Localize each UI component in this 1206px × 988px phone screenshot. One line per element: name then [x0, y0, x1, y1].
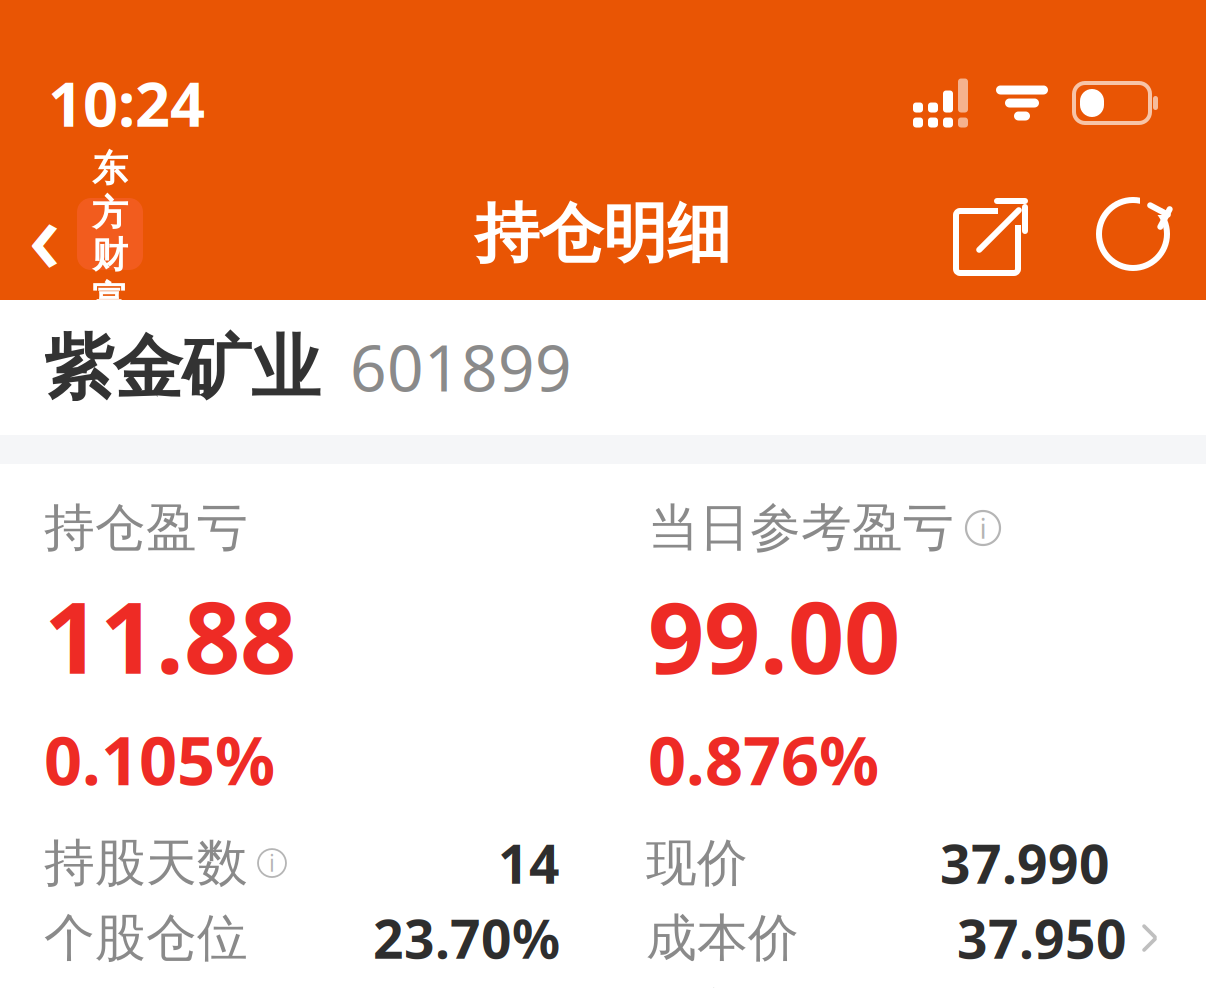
staticText: 紫金矿业 [44, 326, 320, 411]
staticText: 601899 [350, 324, 572, 409]
staticText: 东方 [92, 147, 128, 235]
staticText: 14 [498, 828, 560, 898]
staticText: 23.70% [373, 903, 560, 973]
staticText: 当日参考盈亏 [648, 497, 954, 559]
staticText: 10:24 [48, 62, 205, 144]
button[interactable]: Share [954, 195, 1032, 273]
staticText: 37.950 [957, 903, 1127, 973]
staticText: 成本价 [646, 907, 799, 969]
button[interactable]: Back [0, 159, 143, 309]
staticText: 99.00 [648, 570, 900, 701]
staticText: 持仓明细 [475, 195, 731, 273]
staticText: 持仓盈亏 [44, 497, 248, 559]
staticText: ‹ [28, 167, 61, 301]
staticText: 0.105% [44, 715, 275, 803]
staticText: i [979, 509, 986, 547]
staticText: 个股仓位 [44, 907, 248, 969]
staticText: i [269, 848, 275, 878]
staticText: 现价 [646, 832, 748, 894]
button[interactable]: Refresh [1094, 195, 1172, 273]
staticText: 11.88 [44, 570, 296, 701]
staticText: 37.990 [940, 828, 1110, 898]
staticText: 财富 [92, 233, 128, 321]
staticText: 0.876% [648, 715, 879, 803]
staticText: 持股天数 [44, 832, 248, 894]
